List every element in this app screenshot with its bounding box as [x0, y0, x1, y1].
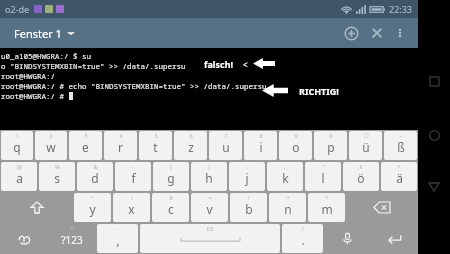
button[interactable]: ) — [191, 162, 227, 191]
staticText: = — [208, 194, 212, 201]
staticText: ~ — [399, 132, 403, 139]
button[interactable]: Fenster 1 — [12, 22, 77, 45]
button[interactable]: & — [77, 162, 113, 191]
button[interactable]: New window — [338, 20, 364, 46]
button[interactable]: + — [269, 193, 306, 222]
staticText: , — [116, 232, 120, 248]
staticText: h — [205, 170, 213, 186]
staticText: u — [222, 139, 230, 155]
button[interactable] — [1, 224, 47, 253]
staticText: % — [55, 163, 60, 170]
button[interactable]: - — [97, 224, 138, 253]
staticText: . — [301, 232, 305, 248]
staticText: * — [397, 163, 401, 170]
button[interactable]: ! — [282, 224, 323, 253]
button[interactable]: * — [381, 162, 417, 191]
button[interactable]: 2 — [35, 131, 67, 160]
button[interactable]: 1 — [1, 131, 33, 160]
button[interactable]: % — [39, 162, 75, 191]
button[interactable]: 3 — [69, 131, 102, 160]
button[interactable]: ; — [267, 162, 303, 191]
staticText: ü — [362, 139, 370, 155]
staticText: ! — [131, 194, 133, 201]
staticText: e — [82, 139, 89, 155]
button[interactable] — [325, 224, 370, 253]
staticText: root@HWGRA:/ — [1, 71, 55, 81]
staticText: root@HWGRA:/ # echo "BINDSYSTEMXBIN=true… — [1, 81, 267, 91]
staticText: o2-de — [5, 3, 30, 15]
button[interactable]: ~ — [384, 131, 417, 160]
button[interactable]: : — [229, 162, 265, 191]
button[interactable]: 9 — [279, 131, 312, 160]
staticText: i — [259, 139, 263, 155]
button[interactable]: = — [191, 193, 228, 222]
button[interactable]: ° — [74, 193, 111, 222]
button[interactable]: ? — [308, 193, 345, 222]
staticText: RICHTIG! — [299, 85, 339, 97]
button[interactable]: Back — [421, 174, 447, 200]
staticText: 6 — [189, 132, 193, 139]
staticText: - — [132, 163, 134, 170]
staticText: f — [131, 170, 136, 186]
button[interactable]: € — [343, 162, 379, 191]
button[interactable]: 0 — [314, 131, 347, 160]
button[interactable]: # — [152, 193, 189, 222]
staticText: d — [91, 170, 99, 186]
staticText: falsch! — [204, 58, 234, 70]
button[interactable]: " — [305, 162, 341, 191]
staticText: ö — [357, 170, 365, 186]
staticText: □ — [363, 132, 369, 138]
button[interactable]: Home — [421, 122, 447, 148]
staticText: € — [359, 163, 363, 170]
staticText: q — [13, 139, 21, 155]
button[interactable]: More options — [390, 23, 410, 43]
button[interactable]: 5 — [139, 131, 172, 160]
button[interactable] — [372, 224, 417, 253]
staticText: m — [321, 201, 333, 217]
staticText: 4 — [119, 132, 123, 139]
button[interactable]: 4 — [104, 131, 137, 160]
staticText: 2 — [49, 132, 53, 139]
staticText: + — [286, 194, 290, 201]
staticText: j — [245, 170, 249, 186]
staticText: DE — [206, 225, 214, 232]
button[interactable]: □ — [349, 131, 382, 160]
staticText: " — [322, 163, 325, 170]
staticText: g — [167, 170, 175, 186]
button[interactable]: / — [230, 193, 267, 222]
button[interactable]: 6 — [174, 131, 207, 160]
staticText: ° — [91, 194, 94, 201]
staticText: t — [153, 139, 158, 155]
button[interactable]: ↵ — [49, 224, 95, 253]
staticText: o — [292, 139, 300, 155]
button[interactable]: 7 — [209, 131, 242, 160]
button[interactable]: - — [115, 162, 151, 191]
button[interactable]: Close window — [364, 20, 390, 46]
button[interactable]: DE — [140, 224, 280, 253]
staticText: n — [284, 201, 292, 217]
staticText: l — [321, 170, 325, 186]
button[interactable]: ! — [113, 193, 150, 222]
staticText: - — [117, 225, 119, 232]
staticText: b — [245, 201, 253, 217]
button[interactable]: @ — [1, 162, 37, 191]
button[interactable] — [347, 193, 417, 222]
button[interactable]: ( — [153, 162, 189, 191]
button[interactable]: 8 — [244, 131, 277, 160]
staticText: p — [327, 139, 335, 155]
staticText: ) — [208, 163, 210, 170]
staticText: ; — [284, 163, 286, 170]
button[interactable]: Recent apps — [421, 68, 447, 94]
staticText: / — [247, 194, 250, 201]
staticText: o "BINDSYSTEMXBIN=true" >> /data/.supers… — [1, 61, 186, 71]
staticText: : — [246, 163, 248, 170]
staticText: k — [282, 170, 289, 186]
staticText: v — [206, 201, 213, 217]
staticText: a — [16, 170, 23, 186]
staticText: 22:33 — [389, 3, 413, 15]
button[interactable] — [1, 193, 72, 222]
staticText: ↵ — [70, 225, 75, 231]
staticText: 9 — [294, 132, 298, 139]
staticText: z — [188, 139, 194, 155]
staticText: ( — [170, 163, 172, 170]
